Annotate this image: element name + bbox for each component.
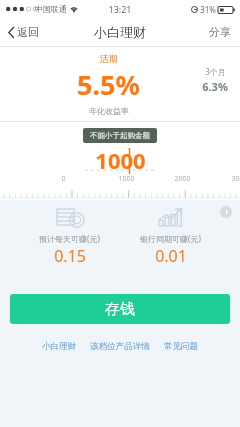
staticText: 0	[61, 174, 66, 184]
button[interactable]: 该档位产品详情	[83, 338, 157, 355]
staticText: 分享	[209, 25, 231, 39]
staticText: 31%	[200, 4, 216, 15]
button[interactable]: 返回	[0, 21, 49, 43]
staticText: 0.01	[155, 245, 187, 267]
staticText: 银行同期可赚(元)	[140, 233, 201, 244]
staticText: 该档位产品详情	[90, 341, 150, 352]
staticText: 小白理财	[42, 341, 76, 352]
staticText: 不能小于起购金额	[90, 131, 150, 140]
staticText: 1000	[95, 145, 146, 175]
staticText: 3000	[231, 174, 240, 184]
staticText: 中国联通	[35, 4, 67, 14]
staticText: 小白理财	[94, 24, 146, 40]
staticText: 6.3%	[202, 79, 228, 94]
button[interactable]: 说明	[220, 206, 232, 218]
staticText: 1000	[118, 174, 135, 184]
staticText: 3个月	[205, 66, 226, 77]
button[interactable]: 存钱	[10, 294, 230, 324]
staticText: i	[225, 207, 228, 217]
staticText: 存钱	[105, 300, 135, 319]
staticText: 2000	[174, 174, 191, 184]
button[interactable]: 分享	[200, 20, 240, 44]
staticText: 13:21	[108, 3, 132, 15]
button[interactable]: 常见问题	[157, 338, 205, 355]
staticText: 5.5%	[77, 66, 140, 103]
staticText: 常见问题	[164, 341, 198, 352]
button[interactable]: 小白理财	[35, 338, 83, 355]
staticText: 预计每天可赚(元)	[39, 233, 100, 244]
staticText: 活期	[100, 53, 118, 64]
staticText: 0.15	[54, 245, 86, 267]
staticText: 返回	[17, 25, 39, 39]
staticText: 年化收益率	[89, 106, 129, 116]
